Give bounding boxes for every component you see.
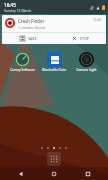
button[interactable]: STOP [54,33,106,44]
button[interactable]: Camera Light [70,52,102,72]
staticText: Bluebottle Data [42,68,66,72]
button[interactable]: Bluebottle Data [38,52,70,72]
staticText: 16:45 [93,18,102,22]
button[interactable]: Crash Finder [2,15,106,44]
button[interactable]: Home [41,167,67,180]
staticText: Canary Software [10,68,35,72]
staticText: SAVE [28,36,37,41]
staticText: Sunday 15 March [4,8,32,13]
staticText: 16:45 [4,2,16,8]
staticText: Camera Light [76,68,97,72]
staticText: 1 crashes found [18,25,45,30]
button[interactable]: Recents [75,167,101,180]
button[interactable]: Apps [47,152,61,166]
button[interactable]: Back [8,167,34,180]
staticText: STOP [80,36,89,41]
button[interactable]: SAVE [2,33,54,44]
button[interactable]: Canary Software [6,52,38,72]
staticText: Crash Finder [18,18,45,24]
